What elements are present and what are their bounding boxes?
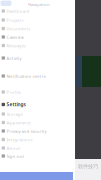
button[interactable]: Projects xyxy=(0,16,75,23)
staticText: Storage xyxy=(6,111,22,117)
staticText: Activity xyxy=(6,55,21,61)
button[interactable]: Integrations xyxy=(0,136,75,143)
staticText: Notification centre xyxy=(6,73,45,79)
button[interactable]: Profile xyxy=(0,88,75,95)
button[interactable]: Settings xyxy=(0,101,75,108)
staticText: Navigation xyxy=(28,1,50,7)
button[interactable]: Privacy and security xyxy=(0,127,75,134)
staticText: Documents xyxy=(6,26,30,31)
staticText: Integrations xyxy=(6,137,32,142)
button[interactable]: Sign out xyxy=(0,152,75,159)
button[interactable]: Appearance xyxy=(0,119,75,126)
button[interactable]: Activity xyxy=(0,54,75,61)
staticText: Privacy and security xyxy=(6,128,46,134)
staticText: 软件技巧 xyxy=(78,163,98,170)
button[interactable]: Calendar xyxy=(0,33,75,40)
staticText: Projects xyxy=(6,17,23,23)
button[interactable]: Messages xyxy=(0,42,75,49)
button[interactable]: Documents xyxy=(0,25,75,32)
button[interactable]: About xyxy=(0,144,75,151)
staticText: Profile xyxy=(6,89,20,95)
staticText: Messages xyxy=(6,43,25,48)
staticText: Dashboard xyxy=(6,8,29,14)
staticText: Sign out xyxy=(6,153,24,159)
staticText: Settings xyxy=(6,101,25,108)
staticText: Calendar xyxy=(6,34,24,40)
staticText: Appearance xyxy=(6,120,30,125)
button[interactable]: Storage xyxy=(0,110,75,117)
button[interactable]: Dashboard xyxy=(0,7,75,14)
button[interactable]: Notification centre xyxy=(0,72,75,79)
staticText: About xyxy=(6,145,20,151)
